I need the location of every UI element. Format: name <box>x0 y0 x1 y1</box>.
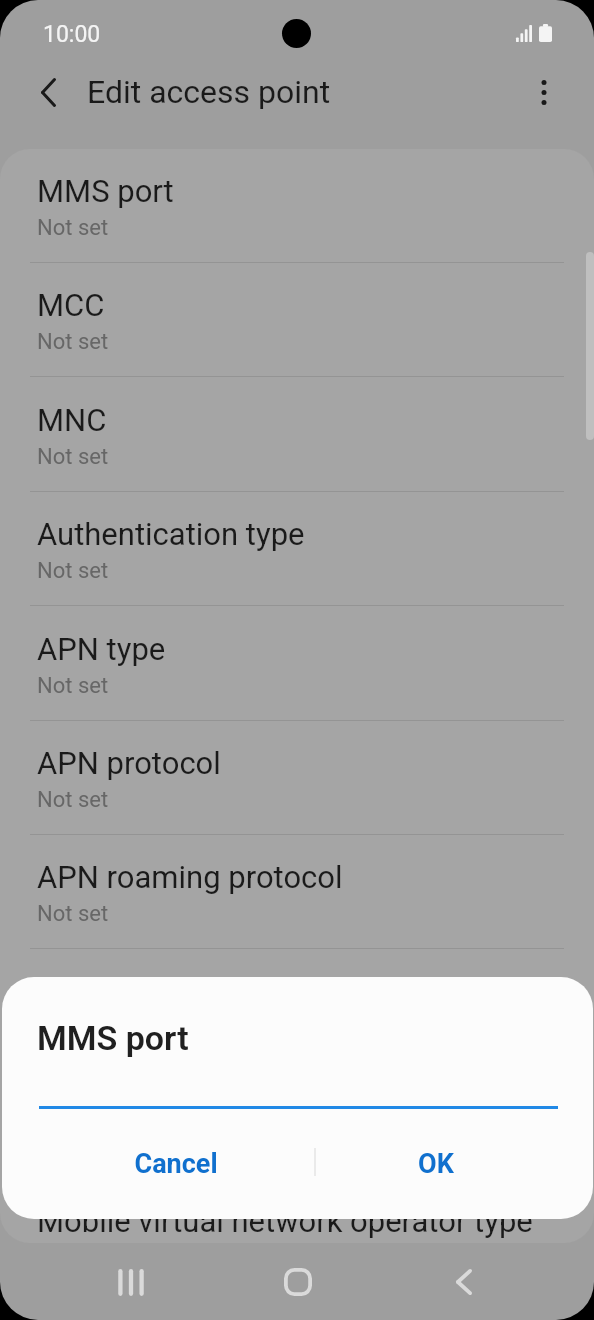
button[interactable]: Back <box>424 1244 503 1320</box>
staticText: Not set <box>37 673 109 699</box>
staticText: Bearer <box>37 1088 127 1124</box>
staticText: MNC <box>37 402 107 438</box>
button[interactable]: MCC <box>0 263 594 377</box>
staticText: Not set <box>37 787 109 813</box>
staticText: Not set <box>37 215 109 241</box>
button[interactable]: APN roaming protocol <box>0 835 594 949</box>
staticText: Cancel <box>134 1148 218 1180</box>
staticText: OK <box>418 1148 454 1180</box>
button[interactable]: Recent apps <box>92 1244 170 1320</box>
staticText: Authentication type <box>37 516 305 552</box>
staticText: Edit access point <box>87 73 331 111</box>
staticText: APN protocol <box>37 745 221 781</box>
staticText: MMS port <box>37 173 174 209</box>
staticText: APN type <box>37 631 166 667</box>
staticText: Not set <box>37 444 109 470</box>
staticText: MMS port <box>37 1018 189 1058</box>
staticText: MCC <box>37 287 105 323</box>
staticText: Not set <box>37 329 109 355</box>
button[interactable]: Authentication type <box>0 492 594 606</box>
button[interactable]: Bearer <box>0 1064 594 1178</box>
button[interactable]: More options <box>517 66 570 119</box>
staticText: Mobile virtual network operator type <box>37 1203 533 1239</box>
button[interactable]: APN enable/disable <box>0 950 594 1064</box>
button[interactable]: Navigate up <box>22 66 75 119</box>
button[interactable]: MNC <box>0 378 594 492</box>
button[interactable]: Mobile virtual network operator type <box>0 1179 594 1243</box>
staticText: APN enable/disable <box>37 974 311 1010</box>
staticText: APN roaming protocol <box>37 859 343 895</box>
button[interactable]: APN type <box>0 607 594 721</box>
button[interactable]: MMS port <box>0 149 594 263</box>
staticText: Not set <box>37 1016 109 1042</box>
button[interactable]: APN protocol <box>0 721 594 835</box>
button[interactable]: Home <box>258 1244 337 1320</box>
staticText: Not set <box>37 901 109 927</box>
staticText: 10:00 <box>43 21 101 48</box>
button[interactable]: OK <box>332 1124 540 1204</box>
button[interactable]: Cancel <box>72 1124 280 1204</box>
staticText: Not set <box>37 558 109 584</box>
